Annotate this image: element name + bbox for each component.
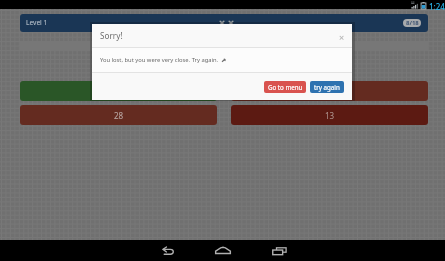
button[interactable]: 13 [231,105,428,125]
staticText: Level 1 [26,18,48,27]
button[interactable]: Close [337,31,346,40]
button[interactable]: 8/18 [403,19,421,27]
staticText: You lost, but you were very close. Try a… [100,56,219,64]
staticText: 8/18 [406,19,419,27]
staticText: 1:24 [429,1,445,10]
button[interactable]: 28 [20,105,217,125]
button[interactable]: Go to menu [264,81,306,93]
button[interactable]: Level 1 [20,14,428,32]
button[interactable] [20,81,217,101]
button[interactable]: try again [310,81,344,93]
button[interactable] [231,81,428,101]
staticText: 13 [325,110,335,121]
button[interactable]: Back [139,240,195,261]
staticText: try again [314,83,340,91]
button[interactable]: Recents [251,240,307,261]
staticText: Sorry! [100,30,123,41]
staticText: 28 [114,110,124,121]
staticText: × [339,31,345,40]
button[interactable]: Home [195,240,251,261]
staticText: Go to menu [268,83,303,91]
